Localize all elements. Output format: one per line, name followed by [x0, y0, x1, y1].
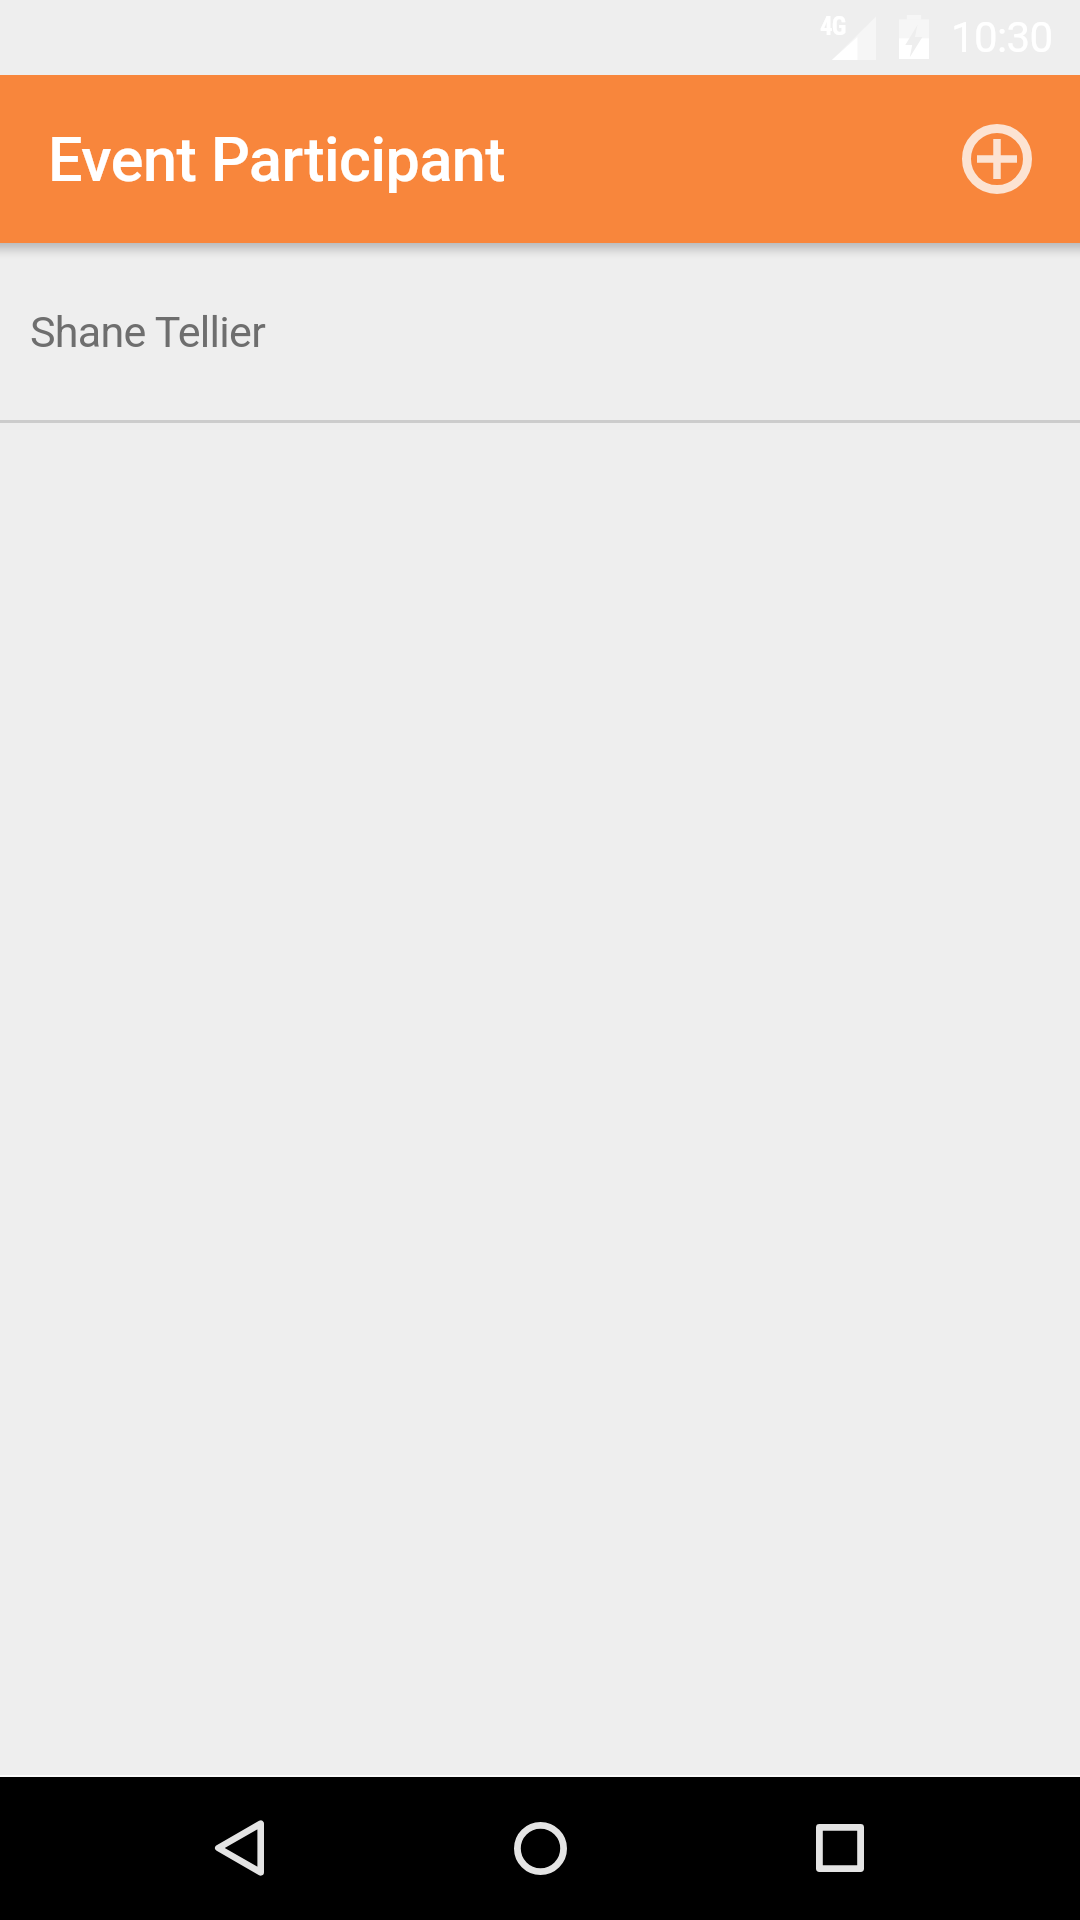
staticText: 10:30 — [951, 13, 1053, 62]
button[interactable]: Recent apps — [780, 1788, 900, 1908]
button[interactable]: Back — [179, 1788, 299, 1908]
button[interactable]: Home — [480, 1788, 600, 1908]
button[interactable]: Shane Tellier — [0, 243, 1080, 423]
staticText: 4G — [820, 12, 846, 41]
staticText: Shane Tellier — [30, 307, 266, 357]
button[interactable]: Add participant — [942, 104, 1052, 214]
staticText: Event Participant — [48, 124, 506, 195]
